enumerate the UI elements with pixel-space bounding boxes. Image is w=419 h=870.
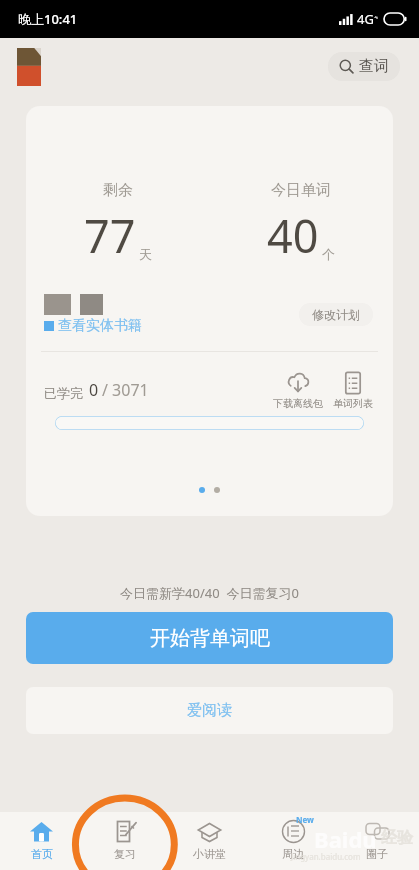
staticText: 圈子 <box>366 847 388 861</box>
staticText: 小讲堂 <box>193 847 226 861</box>
button[interactable]: New <box>251 812 335 870</box>
staticText: 今日单词 <box>271 181 331 200</box>
button[interactable]: Current book <box>17 48 41 86</box>
button[interactable]: 开始背单词吧 <box>26 612 393 664</box>
staticText: 爱阅读 <box>187 701 232 720</box>
staticText: 查词 <box>359 57 389 76</box>
staticText: 复习 <box>114 847 136 861</box>
button[interactable]: 查词 <box>328 52 400 81</box>
staticText: / 3071 <box>102 379 149 401</box>
staticText: ⁺ᵗ <box>374 14 379 24</box>
staticText: 单词列表 <box>333 397 373 410</box>
button[interactable]: 小讲堂 <box>167 812 251 870</box>
staticText: 77 <box>84 205 136 266</box>
staticText: 天 <box>139 246 152 262</box>
staticText: 查看实体书籍 <box>58 317 142 335</box>
button[interactable]: 下载离线包 <box>271 371 325 410</box>
button[interactable]: 复习 <box>83 812 167 870</box>
button[interactable]: 圈子 <box>335 812 419 870</box>
staticText: 今日需新学40/40 今日需复习0 <box>0 584 419 602</box>
button[interactable]: 单词列表 <box>331 371 375 410</box>
staticText: 0 <box>89 379 99 401</box>
staticText: 经验 <box>381 828 413 848</box>
button[interactable]: 爱阅读 <box>26 687 393 734</box>
staticText: 40 <box>267 205 319 266</box>
staticText: 剩余 <box>103 181 133 200</box>
staticText: 晚上10:41 <box>18 10 78 28</box>
staticText: 修改计划 <box>312 307 360 322</box>
button[interactable]: 首页 <box>0 812 83 870</box>
staticText: 个 <box>322 246 335 262</box>
staticText: New <box>296 814 314 825</box>
staticText: 首页 <box>31 847 53 861</box>
staticText: Jingyan.baidu.com <box>291 851 361 862</box>
staticText: 下载离线包 <box>273 397 323 410</box>
staticText: 已学完 <box>44 385 83 401</box>
button[interactable]: 修改计划 <box>299 303 373 326</box>
staticText: 4G <box>357 10 374 28</box>
staticText: Baidu <box>314 824 377 854</box>
button[interactable]: 查看实体书籍 <box>44 317 142 335</box>
staticText: 周边 <box>282 847 304 861</box>
staticText: 开始背单词吧 <box>150 626 270 651</box>
